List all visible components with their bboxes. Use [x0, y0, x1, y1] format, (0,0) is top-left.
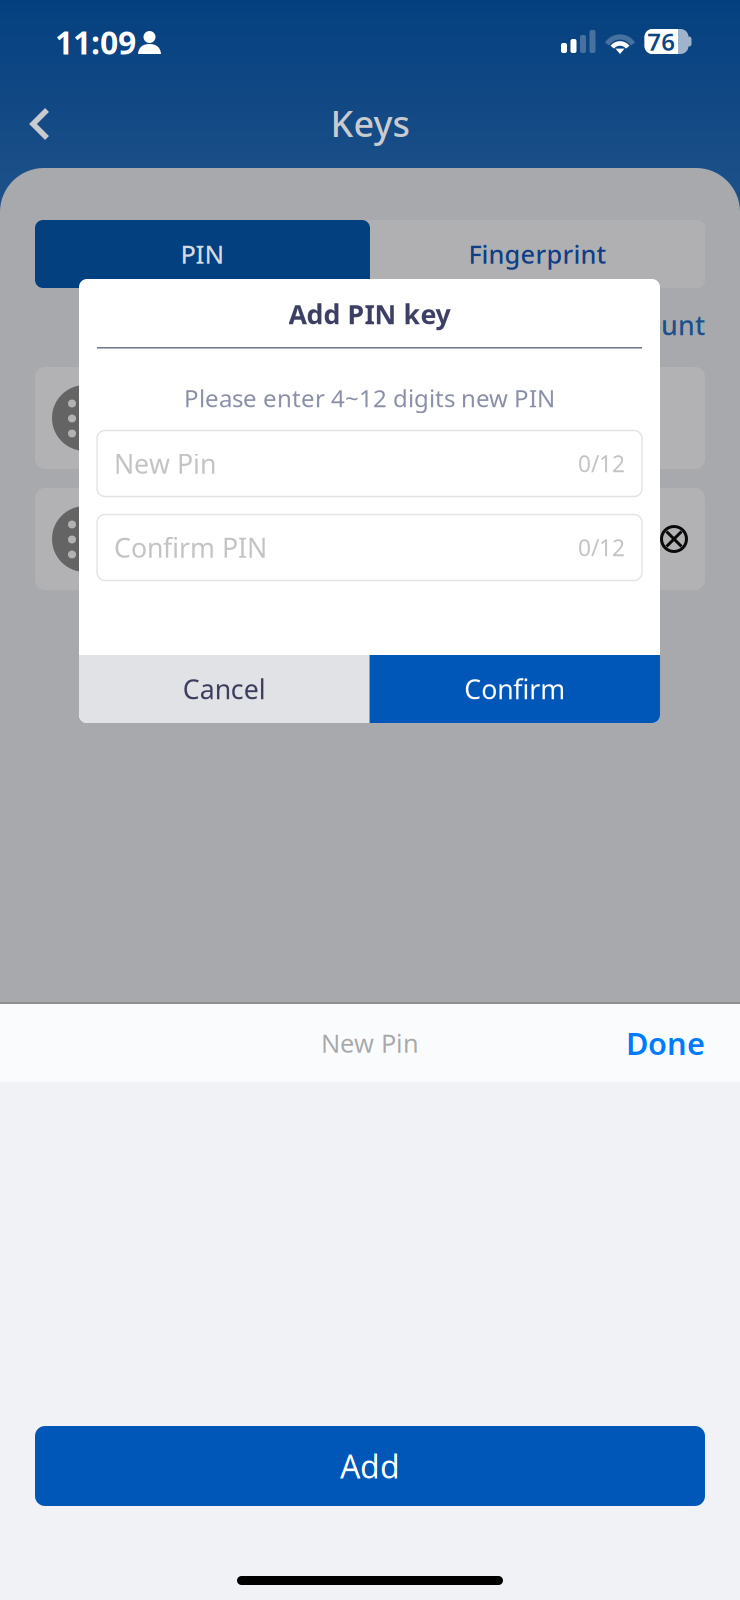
button[interactable]: [35, 367, 705, 469]
staticText: Please enter 4~12 digits new PIN: [184, 382, 555, 414]
staticText: Add account: [546, 307, 705, 343]
staticText: Keys: [330, 99, 409, 147]
staticText: Fingerprint: [468, 237, 606, 271]
staticText: 11:09: [55, 21, 136, 63]
button[interactable]: Done: [563, 1004, 705, 1082]
staticText: Add PIN key: [288, 296, 450, 332]
staticText: Add: [340, 1445, 400, 1487]
button[interactable]: Back: [7, 92, 73, 156]
staticText: Done: [626, 1023, 705, 1063]
staticText: PIN: [180, 237, 224, 271]
staticText: New Pin: [114, 446, 216, 481]
button[interactable]: Add: [35, 1426, 705, 1506]
staticText: 76: [647, 26, 675, 57]
button[interactable]: [35, 488, 705, 590]
button[interactable]: Confirm: [369, 655, 660, 723]
staticText: Confirm PIN: [114, 530, 267, 565]
button[interactable]: Cancel: [79, 655, 369, 723]
staticText: Cancel: [183, 671, 266, 707]
staticText: 0/12: [578, 532, 625, 562]
staticText: 0/12: [578, 448, 625, 478]
staticText: New Pin: [321, 1026, 419, 1060]
staticText: Confirm: [464, 671, 565, 707]
